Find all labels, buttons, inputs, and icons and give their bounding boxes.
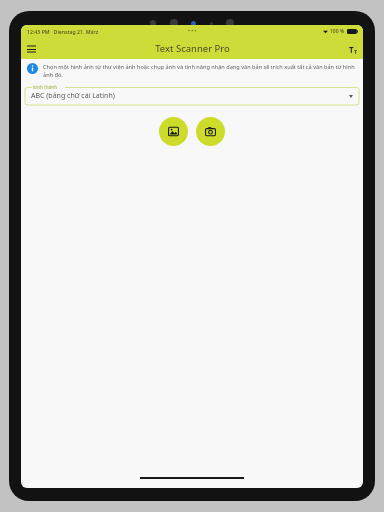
button[interactable]: Take photo with camera [196, 117, 225, 146]
staticText: Chọn một hình ảnh từ thư viện ảnh hoặc c… [43, 63, 355, 79]
staticText: ABC (bảng chữ cái Latinh) [31, 91, 115, 101]
button[interactable]: ABC (bảng chữ cái Latinh) [25, 87, 359, 105]
staticText: T [354, 48, 358, 55]
staticText: 12:43 PM Dienstag 21. März [27, 28, 99, 35]
button[interactable]: Menu [21, 39, 41, 59]
button[interactable]: Text size [343, 39, 363, 59]
staticText: kinh thánh [33, 84, 58, 91]
staticText: T [349, 44, 354, 55]
staticText: Text Scanner Pro [155, 42, 230, 55]
staticText: 100 % [330, 28, 345, 35]
staticText: • • • [188, 28, 197, 35]
button[interactable]: Pick image from gallery [159, 117, 188, 146]
